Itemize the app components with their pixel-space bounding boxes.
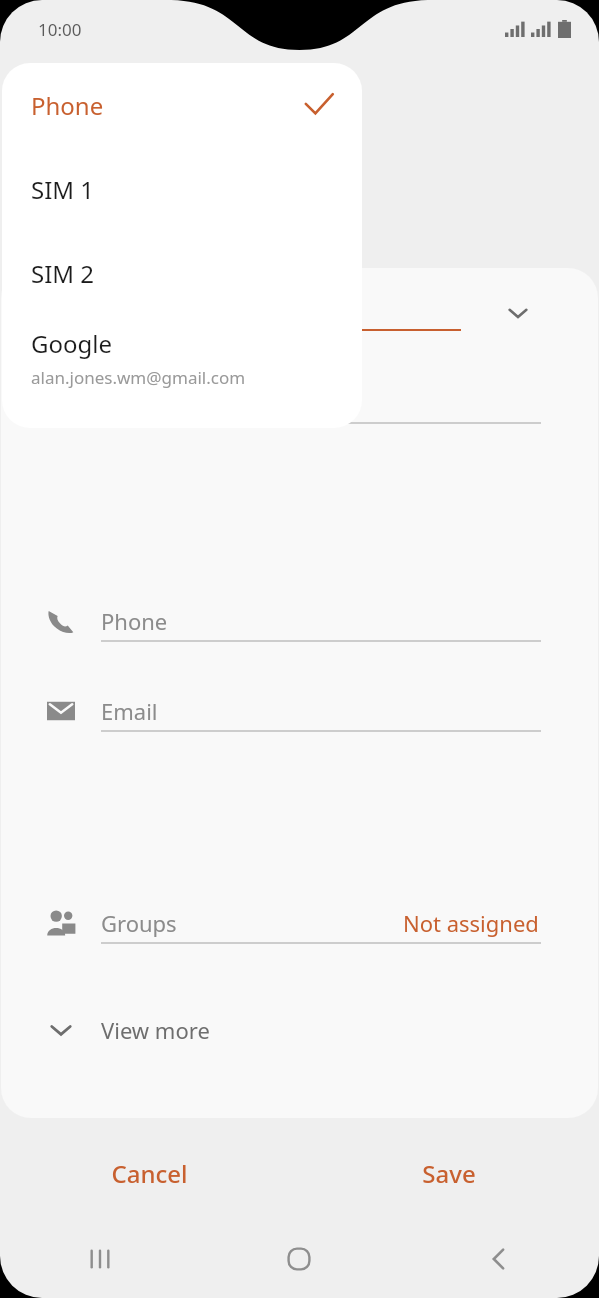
button[interactable]: Save — [299, 1140, 599, 1206]
staticText: alan.jones.wm@gmail.com — [31, 366, 246, 389]
button[interactable]: Google — [2, 315, 362, 415]
button[interactable]: SIM 1 — [2, 147, 362, 231]
staticText: SIM 1 — [31, 173, 95, 206]
staticText: Cancel — [111, 1157, 188, 1190]
staticText: Google — [31, 327, 112, 360]
staticText: Save — [422, 1157, 476, 1190]
button[interactable]: Groups — [1, 878, 598, 968]
staticText: Not assigned — [403, 908, 539, 938]
button[interactable]: Phone — [2, 63, 362, 147]
button[interactable]: Cancel — [0, 1140, 299, 1206]
staticText: 10:00 — [38, 18, 82, 41]
button[interactable]: Phone — [1, 576, 598, 666]
button[interactable]: Back — [399, 1220, 599, 1298]
staticText: Groups — [101, 908, 177, 938]
staticText: Phone — [101, 606, 168, 636]
button[interactable]: Home — [199, 1220, 399, 1298]
button[interactable]: View more — [1, 990, 598, 1070]
button[interactable]: SIM 2 — [2, 231, 362, 315]
button[interactable]: Email — [1, 666, 598, 756]
staticText: Email — [101, 696, 158, 726]
button[interactable]: Name — [1, 268, 598, 358]
staticText: SIM 2 — [31, 257, 95, 290]
staticText: View more — [101, 1015, 210, 1045]
button[interactable]: Expand name — [500, 295, 536, 331]
button[interactable]: Recents — [0, 1220, 199, 1298]
button[interactable]: Work — [1, 358, 598, 448]
staticText: Phone — [31, 89, 104, 122]
